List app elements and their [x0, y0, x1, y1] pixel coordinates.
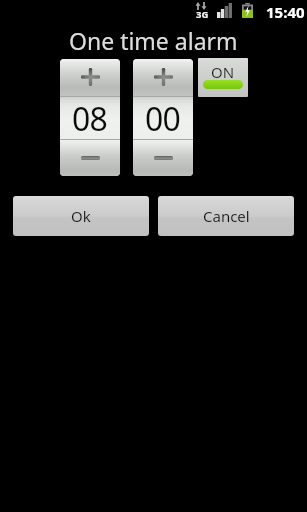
other: Decrease [81, 156, 100, 160]
other: Decrease [154, 156, 173, 160]
button[interactable]: Increase [133, 59, 193, 96]
button[interactable]: Decrease [60, 140, 120, 176]
staticText: One time alarm [69, 25, 238, 56]
staticText: 08 [72, 97, 108, 139]
button[interactable]: Cancel [158, 196, 294, 236]
button[interactable]: Ok [13, 196, 149, 236]
staticText: Cancel [203, 206, 250, 226]
staticText: ON [211, 62, 235, 82]
staticText: 3G [196, 8, 209, 21]
button[interactable]: Decrease [133, 140, 193, 176]
staticText: 00 [145, 97, 181, 139]
button[interactable]: Increase [60, 59, 120, 96]
staticText: 15:40 [266, 2, 305, 22]
button[interactable]: ON [198, 58, 248, 97]
staticText: Ok [71, 206, 91, 226]
other: Increase [81, 68, 100, 86]
other: Increase [154, 68, 173, 86]
